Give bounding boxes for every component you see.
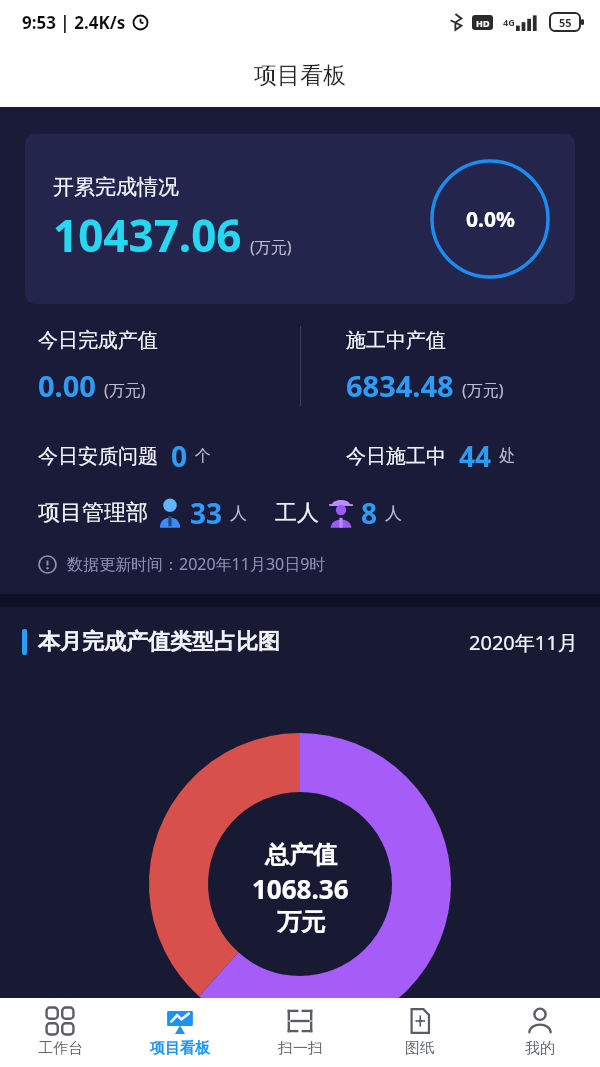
staticText: 人 (230, 503, 247, 524)
button[interactable]: 开累完成情况 (25, 134, 575, 304)
staticText: 1068.36 (252, 871, 349, 906)
staticText: 4G (503, 16, 515, 28)
button[interactable]: 施工中产值 (300, 324, 600, 424)
staticText: 9:53 | 2.4K/s (22, 11, 126, 34)
staticText: 工人 (275, 499, 319, 527)
staticText: (万元) (250, 236, 292, 258)
staticText: 开累完成情况 (53, 174, 179, 200)
staticText: (万元) (104, 379, 146, 401)
staticText: 总产值 (265, 840, 337, 870)
staticText: 今日安质问题 (38, 444, 158, 469)
staticText: 33 (190, 494, 223, 532)
staticText: 人 (385, 503, 402, 524)
staticText: HD (476, 17, 490, 29)
staticText: 项目管理部 (38, 499, 148, 527)
staticText: 个 (195, 446, 211, 466)
staticText: 我的 (525, 1039, 555, 1058)
staticText: 8 (361, 494, 378, 532)
button[interactable]: 扫一扫 (240, 998, 360, 1067)
staticText: 项目看板 (150, 1039, 210, 1058)
staticText: 55 (559, 15, 572, 30)
button[interactable]: 工作台 (0, 998, 120, 1067)
staticText: 数据更新时间：2020年11月30日9时 (67, 553, 326, 575)
staticText: 图纸 (405, 1039, 435, 1058)
button[interactable]: 我的 (480, 998, 600, 1067)
staticText: 万元 (277, 907, 325, 937)
button[interactable]: 图纸 (360, 998, 480, 1067)
button[interactable]: 今日安质问题 (0, 430, 300, 482)
staticText: 今日完成产值 (38, 328, 158, 353)
staticText: 项目看板 (254, 61, 346, 90)
staticText: 10437.06 (53, 205, 242, 265)
button[interactable]: 今日完成产值 (0, 324, 300, 424)
button[interactable]: 项目管理部 (0, 488, 600, 538)
staticText: 施工中产值 (346, 328, 446, 353)
button[interactable]: 项目看板 (120, 998, 240, 1067)
staticText: 本月完成产值类型占比图 (38, 628, 280, 656)
staticText: 0.0% (466, 205, 515, 234)
staticText: 今日施工中 (346, 444, 446, 469)
staticText: 工作台 (38, 1039, 83, 1058)
staticText: 44 (459, 437, 492, 475)
staticText: 扫一扫 (278, 1039, 323, 1058)
staticText: 6834.48 (346, 366, 454, 405)
staticText: 2020年11月 (469, 629, 578, 656)
staticText: 处 (499, 446, 515, 466)
staticText: (万元) (462, 379, 504, 401)
staticText: 0 (171, 437, 188, 475)
button[interactable]: 今日施工中 (300, 430, 600, 482)
staticText: 0.00 (38, 366, 96, 405)
